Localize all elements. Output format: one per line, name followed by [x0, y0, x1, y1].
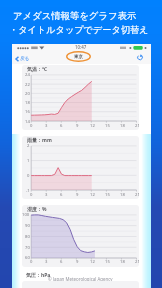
staticText: 21 [135, 123, 139, 128]
staticText: 気温：℃ [27, 66, 48, 73]
staticText: 20 [25, 91, 30, 96]
button[interactable]: 雨量：mm [22, 136, 139, 199]
staticText: 18 [120, 259, 125, 264]
staticText: 90 [25, 223, 30, 228]
staticText: -1 [26, 188, 30, 193]
staticText: 6 [60, 192, 63, 197]
staticText: 3 [45, 192, 48, 197]
staticText: 70 [25, 245, 30, 250]
staticText: 9 [76, 259, 79, 264]
staticText: 6 [60, 123, 63, 128]
staticText: 9 [76, 192, 79, 197]
staticText: 14 [25, 119, 30, 124]
staticText: 気圧：hPa [26, 272, 51, 279]
staticText: 10:47 [75, 44, 87, 49]
staticText: 0 [30, 192, 33, 197]
staticText: 3 [45, 259, 48, 264]
staticText: 15 [105, 123, 110, 128]
staticText: 18 [25, 100, 30, 105]
staticText: 80 [25, 234, 30, 239]
staticText: 100 [22, 212, 30, 217]
staticText: 21 [135, 259, 139, 264]
staticText: 15 [105, 192, 110, 197]
staticText: 12 [90, 259, 95, 264]
staticText: 戻る [20, 56, 30, 62]
staticText: 0 [30, 123, 33, 128]
staticText: 1 [27, 158, 30, 163]
staticText: 9 [76, 123, 79, 128]
button[interactable]: Refresh [137, 54, 143, 61]
staticText: ・タイトルタップでデータ切替え [9, 24, 149, 36]
button[interactable]: 気温：℃ [22, 65, 139, 130]
staticText: 18 [120, 123, 125, 128]
staticText: 22 [25, 82, 30, 87]
button[interactable]: 戻る [15, 55, 30, 62]
staticText: 雨量：mm [27, 137, 52, 144]
staticText: © Japan Meteorological Agency [48, 276, 113, 282]
staticText: 16 [25, 109, 30, 114]
staticText: 0 [27, 173, 30, 178]
staticText: 18 [120, 192, 125, 197]
staticText: 2 [27, 143, 30, 148]
staticText: 0 [30, 259, 33, 264]
staticText: 東京 [74, 54, 83, 59]
button[interactable]: 湿度：% [22, 205, 139, 267]
staticText: 15 [105, 259, 110, 264]
staticText: 6 [60, 259, 63, 264]
staticText: 24 [25, 72, 30, 77]
staticText: 湿度：% [27, 206, 47, 213]
staticText: 12 [90, 192, 95, 197]
staticText: 12 [90, 123, 95, 128]
staticText: 3 [45, 123, 48, 128]
staticText: 60 [25, 255, 30, 260]
button[interactable]: 東京 [70, 54, 87, 59]
staticText: アメダス情報等をグラフ表示 [13, 10, 137, 22]
staticText: 21 [135, 192, 139, 197]
